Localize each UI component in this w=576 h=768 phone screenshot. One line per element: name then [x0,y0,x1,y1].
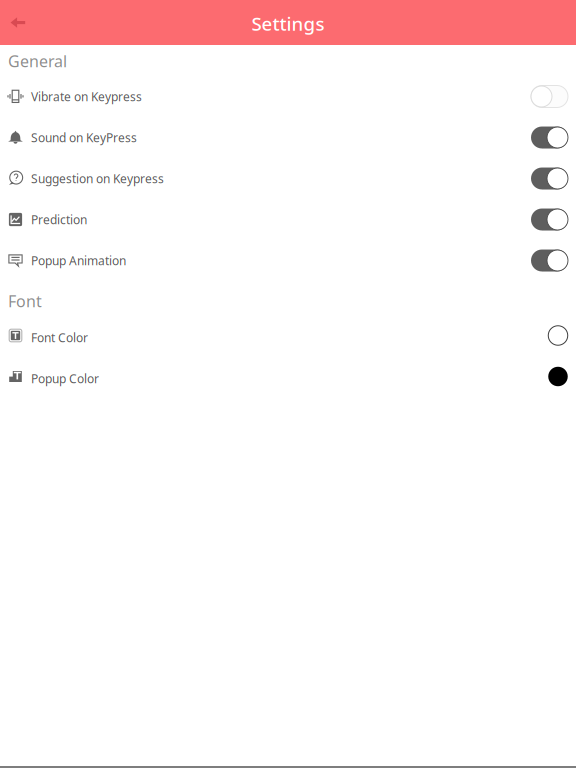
staticText: Popup Color [31,370,99,386]
button[interactable]: Popup Color [0,361,576,402]
button[interactable]: Vibrate on Keypress [0,79,576,120]
button[interactable]: Prediction [0,202,576,243]
staticText: Prediction [31,211,87,227]
button[interactable]: Popup Animation [0,243,576,284]
button[interactable]: Font Color [0,320,576,361]
button[interactable]: Back [0,0,36,45]
staticText: Font [8,290,42,312]
staticText: Font Color [31,329,88,345]
staticText: Suggestion on Keypress [31,170,164,186]
staticText: Settings [251,11,324,36]
staticText: Vibrate on Keypress [31,88,142,104]
staticText: Sound on KeyPress [31,129,137,145]
button[interactable]: Suggestion on Keypress [0,161,576,202]
button[interactable]: Sound on KeyPress [0,120,576,161]
staticText: Popup Animation [31,252,126,268]
staticText: General [8,50,67,72]
